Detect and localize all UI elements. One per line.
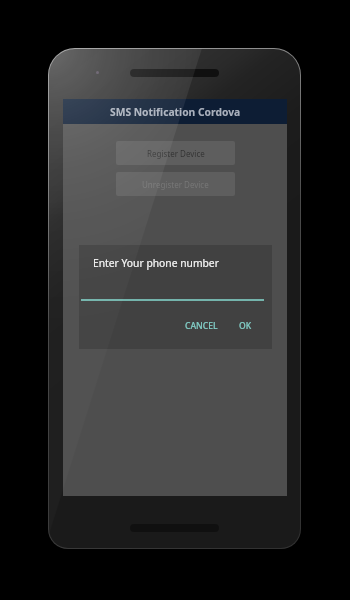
staticText: Enter Your phone number (93, 256, 219, 270)
button[interactable]: Register Device (116, 141, 235, 165)
button[interactable]: CANCEL (179, 316, 224, 336)
button[interactable]: Unregister Device (116, 172, 235, 196)
staticText: Unregister Device (142, 179, 209, 190)
staticText: CANCEL (185, 320, 218, 332)
staticText: OK (239, 320, 252, 332)
staticText: SMS Notification Cordova (110, 105, 241, 119)
button[interactable]: OK (233, 316, 258, 336)
staticText: Register Device (147, 148, 205, 159)
